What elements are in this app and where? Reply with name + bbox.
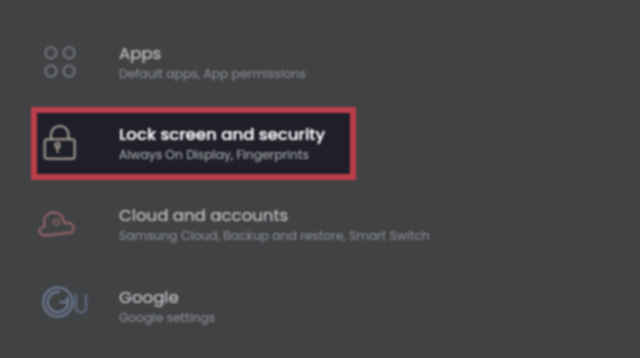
button[interactable] [0, 265, 640, 346]
other: Apps [43, 45, 77, 79]
button[interactable] [0, 22, 640, 103]
staticText: Google settings [119, 309, 216, 326]
staticText: Apps [119, 42, 162, 65]
staticText: Lock screen and security [119, 123, 326, 146]
staticText: Default apps, App permissions [119, 65, 306, 82]
staticText: Cloud and accounts [119, 204, 289, 227]
other: Lock screen and security [42, 124, 78, 162]
staticText: Google [119, 286, 179, 309]
other: Google settings [40, 286, 90, 320]
button[interactable] [37, 113, 350, 174]
button[interactable] [0, 184, 640, 265]
other: Cloud and accounts [38, 208, 76, 240]
staticText: Always On Display, Fingerprints [119, 146, 309, 163]
staticText: Samsung Cloud, Backup and restore, Smart… [119, 227, 430, 244]
